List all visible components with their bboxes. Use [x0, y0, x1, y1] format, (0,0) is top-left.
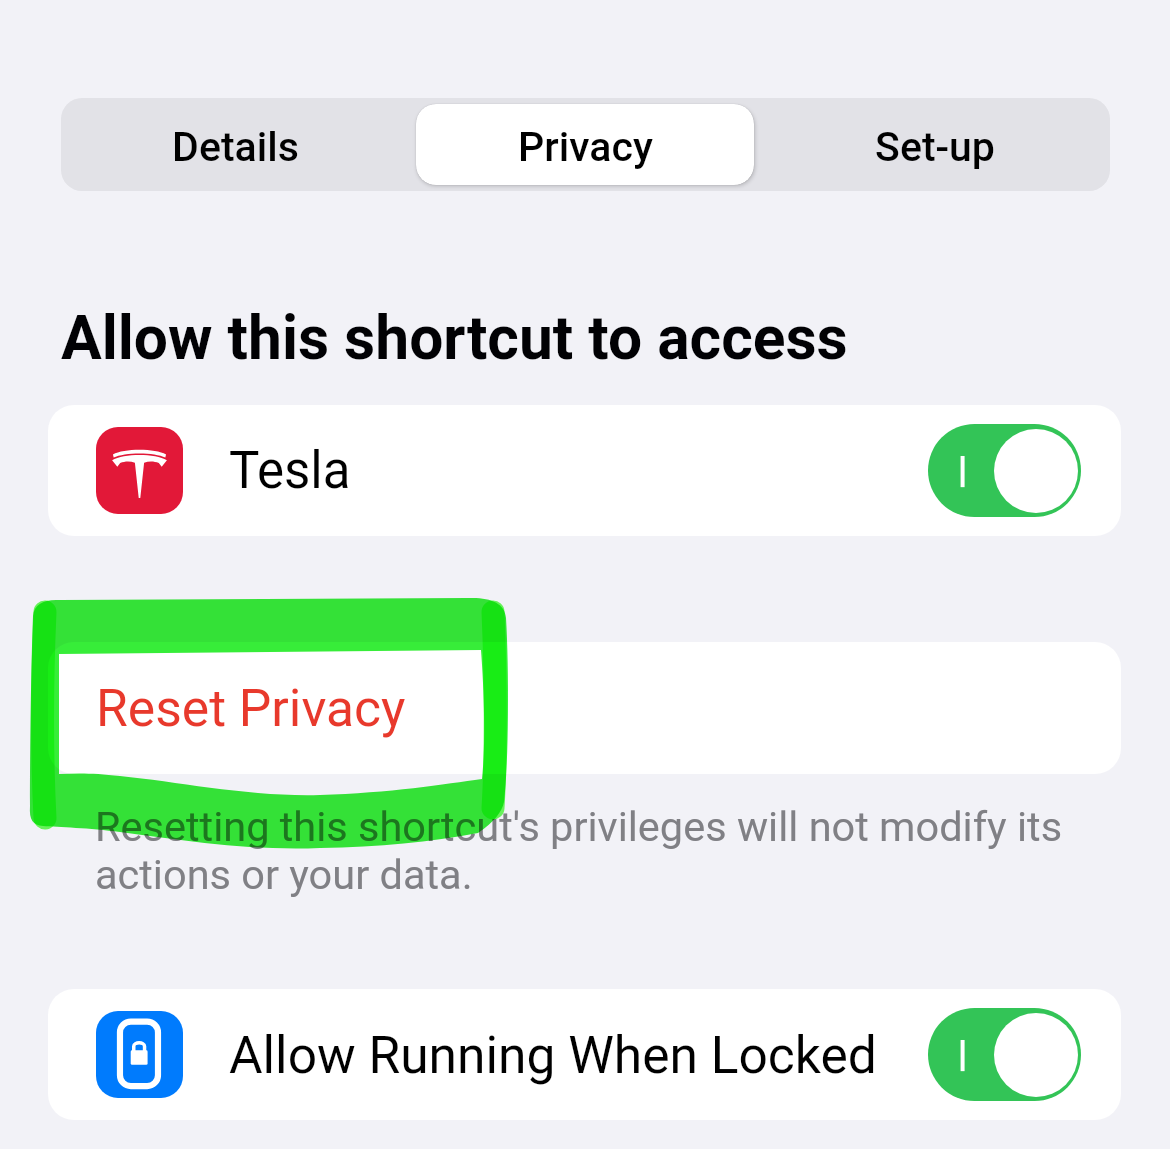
staticText: Privacy — [518, 123, 653, 171]
button[interactable]: Privacy — [416, 104, 754, 185]
button[interactable]: Details — [67, 104, 404, 185]
staticText: Details — [172, 123, 299, 171]
staticText: Allow Running When Locked — [229, 1025, 877, 1085]
staticText: Allow this shortcut to access — [61, 303, 848, 374]
button[interactable]: Toggle — [928, 424, 1081, 517]
staticText: Set-up — [875, 123, 995, 171]
button[interactable]: Set-up — [766, 104, 1104, 185]
staticText: Resetting this shortcut's privileges wil… — [95, 802, 1075, 899]
button[interactable]: Reset Privacy — [48, 642, 1121, 774]
button[interactable]: Toggle — [928, 1008, 1081, 1101]
staticText: Tesla — [229, 441, 351, 501]
staticText: Reset Privacy — [96, 678, 406, 738]
